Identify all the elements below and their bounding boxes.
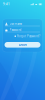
staticText: LOGIN	[18, 43, 26, 46]
button[interactable]: Forgot Password?	[5, 35, 40, 38]
staticText: Forgot Password?	[17, 34, 40, 38]
staticText: Username	[10, 22, 23, 26]
staticText: 9:41	[3, 2, 10, 6]
button[interactable]: LOGIN	[4, 42, 40, 48]
staticText: Password	[10, 28, 22, 32]
